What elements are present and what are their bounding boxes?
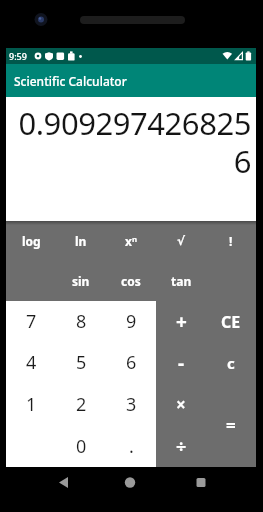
button[interactable]: CE <box>206 301 256 342</box>
staticText: tan <box>171 273 192 289</box>
staticText: 5 <box>76 350 87 375</box>
button[interactable]: 1 <box>6 383 56 425</box>
button[interactable]: × <box>156 383 206 425</box>
staticText: ÷ <box>176 434 187 459</box>
staticText: - <box>178 350 185 376</box>
staticText: . <box>129 434 134 459</box>
button[interactable]: 8 <box>56 301 106 342</box>
staticText: 1 <box>26 392 37 417</box>
button[interactable]: 2 <box>56 383 106 425</box>
staticText: + <box>176 309 187 335</box>
button[interactable]: tan <box>156 261 206 301</box>
staticText: √ <box>177 234 186 248</box>
button[interactable]: 0 <box>56 425 106 467</box>
staticText: 6 <box>126 350 137 375</box>
staticText: cos <box>121 273 141 289</box>
staticText: sin <box>72 273 90 289</box>
button[interactable] <box>90 467 173 496</box>
staticText: 0.909297426825 6 <box>6 102 251 182</box>
button[interactable]: cos <box>106 261 156 301</box>
button[interactable]: c <box>206 342 256 384</box>
staticText: = <box>226 414 236 437</box>
button[interactable]: ÷ <box>156 425 206 467</box>
staticText: ln <box>75 233 87 249</box>
button[interactable]: . <box>106 425 156 467</box>
button[interactable]: xⁿ <box>106 221 156 261</box>
button[interactable]: 5 <box>56 342 106 383</box>
staticText: 9 <box>126 309 137 334</box>
staticText: 3 <box>126 392 137 417</box>
staticText: c <box>227 353 235 373</box>
staticText: 4 <box>26 350 37 375</box>
button[interactable] <box>6 467 90 496</box>
button[interactable]: sin <box>56 261 106 301</box>
button[interactable] <box>173 467 256 496</box>
staticText: xⁿ <box>125 233 138 249</box>
button[interactable]: 4 <box>6 342 56 383</box>
button[interactable]: = <box>206 384 256 467</box>
staticText: log <box>22 233 41 249</box>
button[interactable]: 3 <box>106 383 156 425</box>
button[interactable]: + <box>156 301 206 342</box>
staticText: 7 <box>26 309 37 334</box>
staticText: Scientific Calculator <box>14 73 127 89</box>
staticText: 9:59 <box>9 50 27 62</box>
staticText: CE <box>221 311 241 333</box>
button[interactable]: 7 <box>6 301 56 342</box>
button[interactable]: ln <box>56 221 106 261</box>
button[interactable]: √ <box>156 221 206 261</box>
staticText: × <box>176 393 186 416</box>
staticText: 0 <box>76 434 87 459</box>
staticText: ! <box>229 233 233 249</box>
button[interactable]: - <box>156 342 206 383</box>
button[interactable]: Scientific Calculator <box>6 64 256 97</box>
staticText: 8 <box>76 309 87 334</box>
staticText: 2 <box>76 392 87 417</box>
button[interactable]: 6 <box>106 342 156 383</box>
button[interactable]: log <box>6 221 56 261</box>
button[interactable]: 9 <box>106 301 156 342</box>
button[interactable]: ! <box>206 221 256 261</box>
